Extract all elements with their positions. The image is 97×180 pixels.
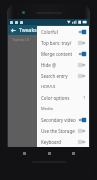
button[interactable]: On [78,117,86,123]
button[interactable]: Search entry [37,70,89,81]
button[interactable]: Use the Storage Access Framework [37,125,89,136]
staticText: Hide @ thumbnails [41,62,76,68]
button[interactable]: Home [46,150,52,156]
button[interactable]: Off [78,73,86,79]
staticText: HDR/UI [41,84,56,89]
staticText: Use the Storage Access Framework [41,128,76,134]
button[interactable]: Recents [70,150,76,156]
button[interactable]: On [78,29,86,35]
staticText: Colorful controls [41,29,76,35]
staticText: Color options [41,95,83,101]
staticText: Keyboard suggestions and Tweak [41,139,76,145]
staticText: 1 [83,95,86,100]
button[interactable]: Back [21,150,27,156]
button[interactable]: Off [78,62,86,68]
button[interactable]: Top bars: tray/Noah.it [37,37,89,48]
button[interactable]: Off [78,128,86,134]
staticText: Top bars: tray/Noah.it [41,40,76,46]
button[interactable]: Hide @ thumbnails [37,59,89,70]
staticText: Tweaks [19,27,37,34]
button[interactable]: Off [78,139,86,145]
staticText: Auto enter [41,149,76,155]
button[interactable]: Colorful controls [37,26,89,37]
staticText: Tweak UI [12,37,30,42]
button[interactable]: Off [78,40,86,46]
staticText: Media [41,106,53,111]
staticText: Search entry [41,73,76,79]
button[interactable]: Back [10,27,17,34]
button[interactable]: On [78,51,86,57]
button[interactable]: Color options [37,92,89,103]
staticText: Secondary video [41,117,76,123]
button[interactable]: Merge content [37,48,89,59]
button[interactable]: Secondary video [37,114,89,125]
button[interactable]: Keyboard suggestions and Tweak [37,136,89,147]
button[interactable]: Auto enter [37,147,89,157]
staticText: Merge content [41,51,76,57]
